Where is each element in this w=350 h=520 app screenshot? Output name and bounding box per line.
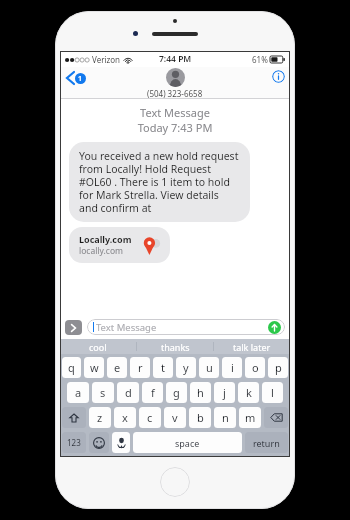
button[interactable]: o [245,357,265,378]
staticText: i [231,360,234,375]
staticText: 1 [78,74,83,84]
staticText: v [172,410,178,425]
staticText: cool [89,341,107,353]
staticText: f [151,385,155,400]
button[interactable]: z [89,407,111,428]
staticText: l [271,385,274,400]
button[interactable]: Send [268,321,281,334]
button[interactable]: Details [272,70,285,83]
button[interactable]: m [239,407,261,428]
button[interactable]: j [214,382,235,403]
staticText: space [175,437,200,449]
staticText: thanks [161,341,190,353]
staticText: return [253,437,280,449]
button[interactable]: return [245,432,288,453]
staticText: 7:44 PM [159,53,192,65]
button[interactable]: t [153,357,173,378]
staticText: s [100,385,106,400]
button[interactable]: 123 [62,432,86,453]
staticText: z [97,410,103,425]
staticText: Today 7:43 PM [60,120,290,135]
button[interactable]: k [238,382,259,403]
staticText: k [246,385,252,400]
button[interactable]: l [262,382,283,403]
button[interactable] [264,407,288,428]
staticText: j [223,385,226,400]
button[interactable]: h [190,382,211,403]
button[interactable] [89,432,109,453]
staticText: You received a new hold request from Loc… [79,149,240,215]
staticText: 61% [252,54,268,65]
staticText: x [122,410,128,425]
staticText: p [275,360,282,375]
staticText: Verizon [92,54,121,65]
staticText: locally.com [79,245,124,257]
staticText: t [161,360,165,375]
staticText: u [206,360,213,375]
staticText: q [68,360,75,375]
staticText: Locally.com [79,233,132,245]
staticText: Text Message [60,105,290,120]
button[interactable]: Text Message [87,319,285,335]
staticText: y [183,360,189,375]
staticText: (504) 323-6658 [147,88,203,99]
staticText: d [125,385,132,400]
button[interactable]: p [268,357,288,378]
button[interactable]: n [214,407,236,428]
button[interactable]: i [222,357,242,378]
staticText: b [197,410,204,425]
button[interactable]: Locally.com [69,227,170,263]
button[interactable]: q [62,357,81,378]
staticText: e [114,360,121,375]
button[interactable]: Dictate [112,432,130,453]
button[interactable] [62,407,86,428]
button[interactable]: d [117,382,139,403]
button[interactable]: talk later [214,339,290,354]
staticText: g [173,385,180,400]
staticText: o [252,360,259,375]
button[interactable]: r [130,357,150,378]
staticText: w [90,360,99,375]
staticText: Text Message [96,321,157,334]
staticText: c [147,410,153,425]
button[interactable]: u [199,357,219,378]
button[interactable]: Back to Messages [64,69,89,87]
button[interactable]: App drawer [65,320,82,335]
button[interactable]: y [176,357,196,378]
button[interactable]: s [92,382,114,403]
staticText: a [75,385,82,400]
staticText: talk later [233,341,271,353]
staticText: r [138,360,143,375]
staticText: n [222,410,229,425]
button[interactable]: e [107,357,127,378]
staticText: m [245,410,256,425]
button[interactable]: f [142,382,163,403]
button[interactable]: thanks [137,339,213,354]
button[interactable]: a [67,382,89,403]
button[interactable]: w [84,357,104,378]
button[interactable]: v [164,407,186,428]
button[interactable]: g [166,382,187,403]
button[interactable]: x [114,407,136,428]
staticText: h [197,385,204,400]
button[interactable]: c [139,407,161,428]
button[interactable]: b [189,407,211,428]
staticText: 123 [67,437,81,448]
button[interactable]: cool [60,339,136,354]
button[interactable]: space [133,432,242,453]
button[interactable]: You received a new hold request from Loc… [69,142,250,222]
